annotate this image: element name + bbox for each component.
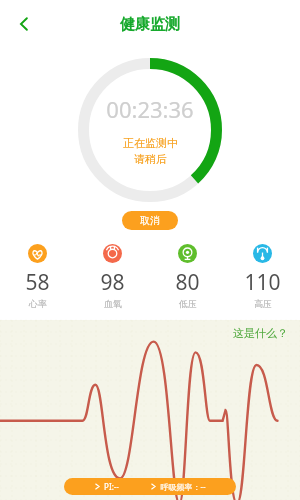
staticText: 58 [25,268,50,297]
other: 高压 [253,244,272,263]
staticText: 血氧 [104,298,122,309]
staticText: PI:-- [104,481,119,492]
button[interactable]: 取消 [122,211,178,230]
button[interactable]: 心率 [0,238,75,309]
staticText: 正在监测中 [123,136,178,150]
other: 血氧 [103,244,122,263]
staticText: 80 [175,268,200,297]
staticText: 健康监测 [120,15,180,34]
staticText: 请稍后 [134,152,167,166]
button[interactable]: 高压 [225,238,300,309]
button[interactable]: Back [6,6,42,42]
button[interactable]: 低压 [150,238,225,309]
staticText: 这是什么？ [233,326,288,340]
staticText: 呼吸频率：-- [160,481,206,492]
button[interactable]: PI:-- [64,478,236,495]
staticText: 低压 [179,298,197,309]
staticText: 110 [244,268,281,297]
other: 心率 [28,244,47,263]
other: 低压 [178,244,197,263]
staticText: 98 [100,268,125,297]
staticText: 心率 [29,298,47,309]
staticText: 00:23:36 [106,94,194,124]
button[interactable]: 血氧 [75,238,150,309]
button[interactable]: 这是什么？ [231,324,290,342]
staticText: 取消 [140,214,160,227]
staticText: 高压 [254,298,272,309]
